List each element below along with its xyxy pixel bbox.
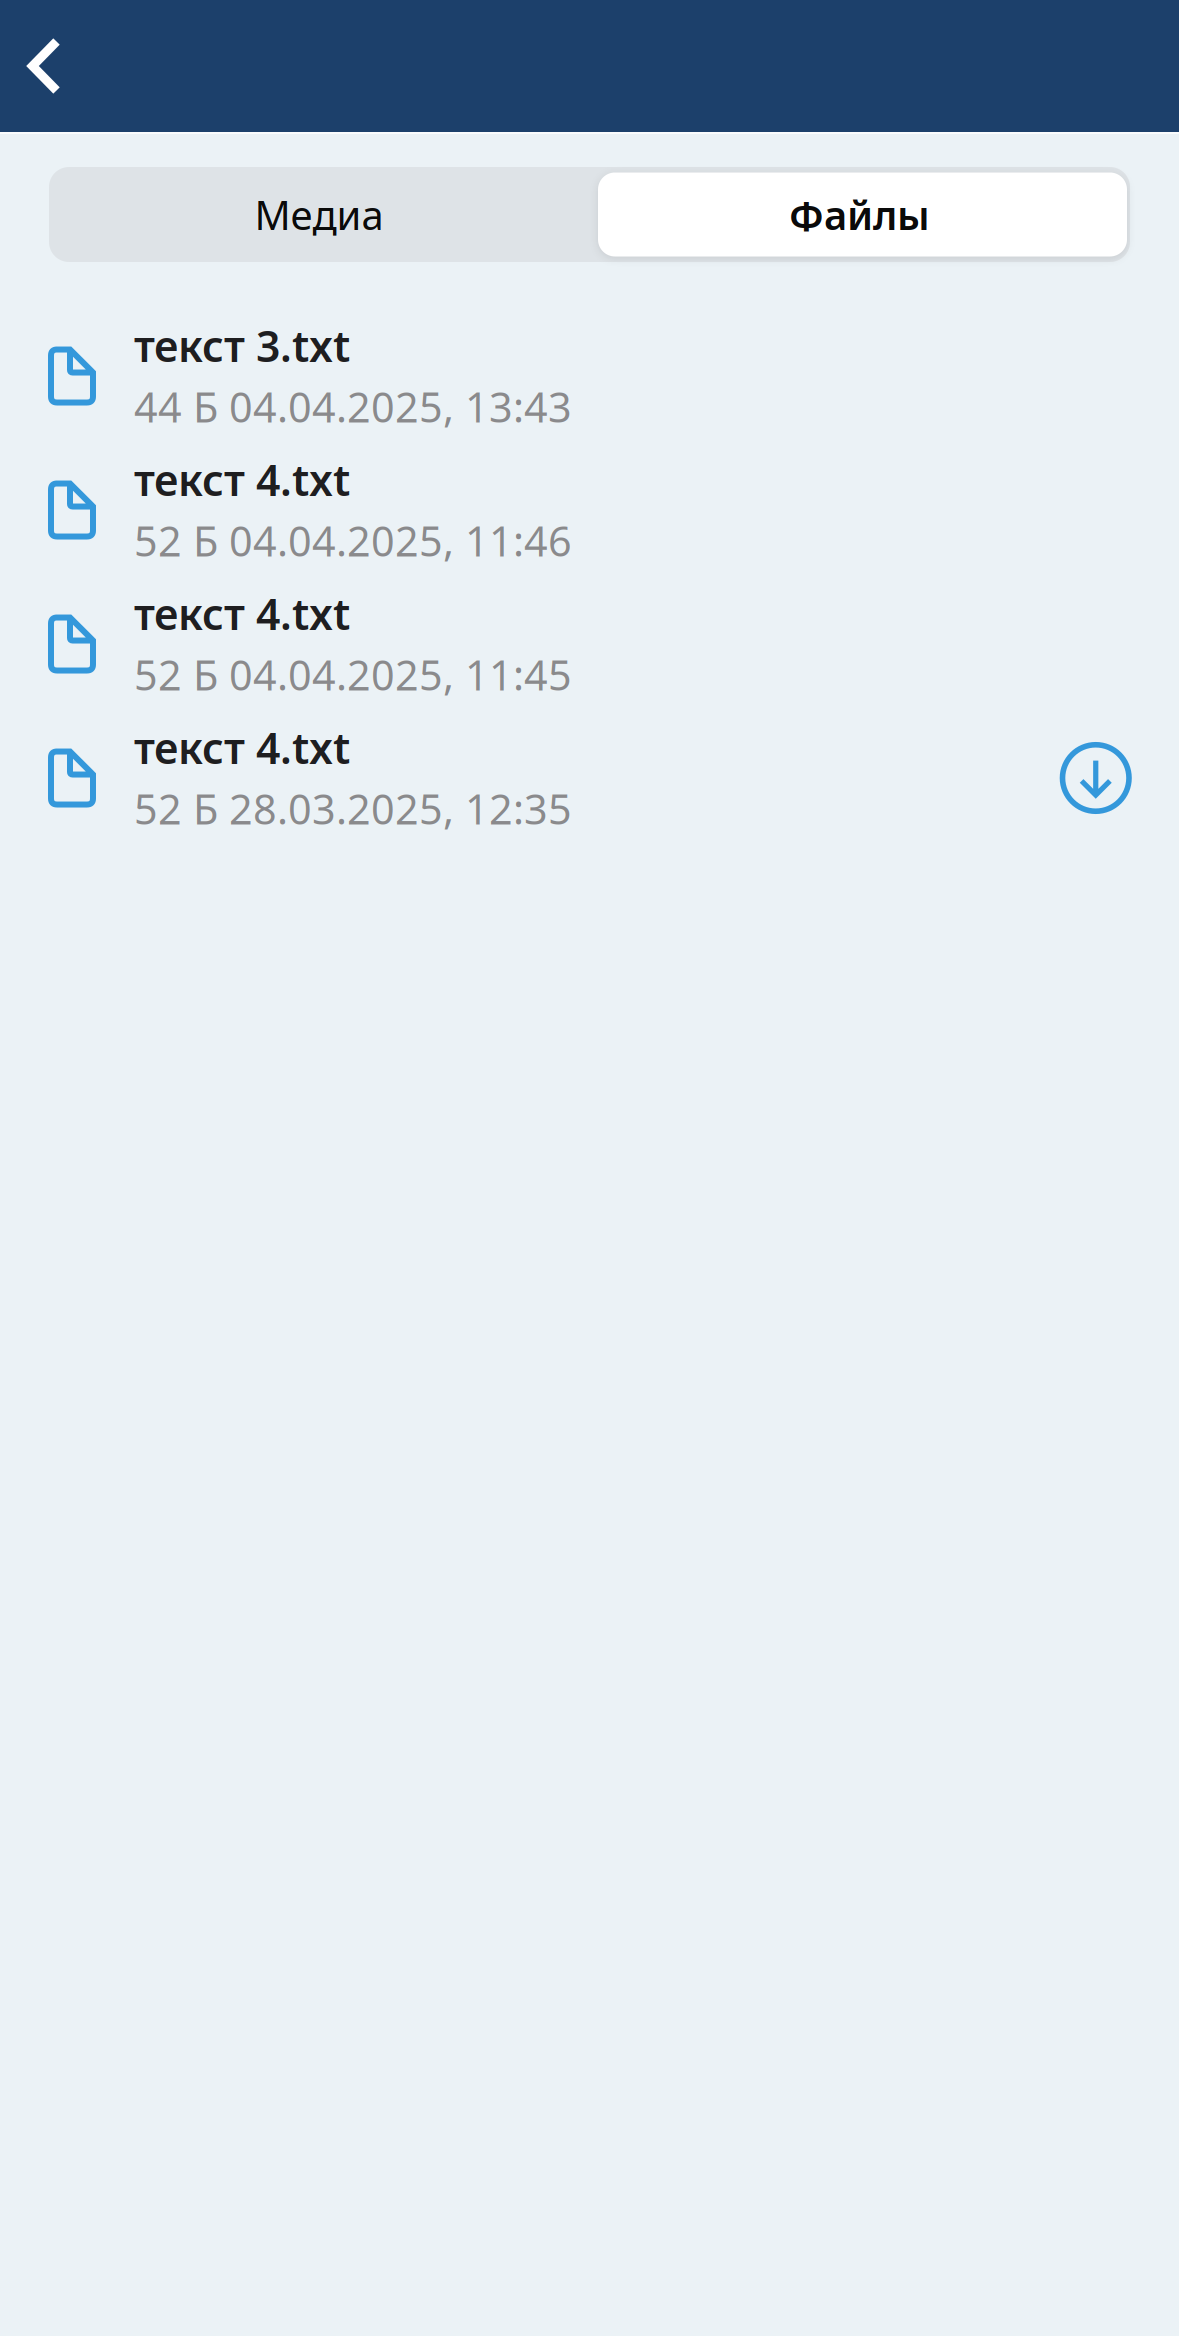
button[interactable]: текст 3.txt bbox=[0, 309, 1179, 443]
button[interactable]: текст 4.txt bbox=[0, 577, 1179, 711]
staticText: 44 Б 04.04.2025, 13:43 bbox=[134, 379, 572, 434]
button[interactable]: текст 4.txt bbox=[0, 443, 1179, 577]
staticText: текст 4.txt bbox=[134, 719, 350, 776]
staticText: текст 3.txt bbox=[134, 317, 350, 374]
staticText: 52 Б 04.04.2025, 11:45 bbox=[134, 647, 572, 702]
button[interactable]: Файлы bbox=[589, 167, 1130, 262]
staticText: текст 4.txt bbox=[134, 451, 350, 508]
button[interactable]: текст 4.txt bbox=[0, 711, 1179, 845]
staticText: 52 Б 28.03.2025, 12:35 bbox=[134, 781, 572, 836]
staticText: Медиа bbox=[254, 188, 383, 241]
staticText: текст 4.txt bbox=[134, 585, 350, 642]
staticText: 52 Б 04.04.2025, 11:46 bbox=[134, 513, 572, 568]
button[interactable]: Медиа bbox=[49, 167, 589, 262]
staticText: Файлы bbox=[789, 188, 930, 241]
button[interactable]: Back bbox=[0, 0, 100, 132]
